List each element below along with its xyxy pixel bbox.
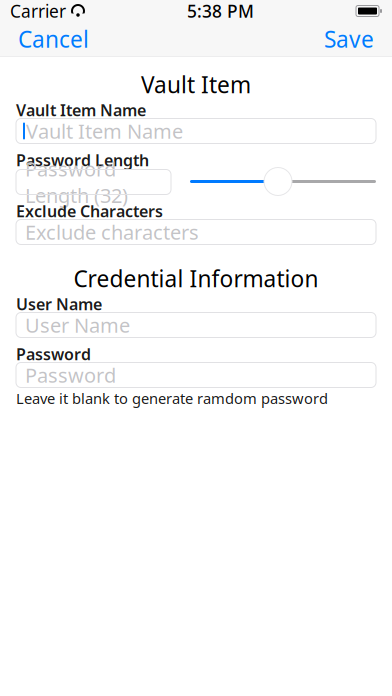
staticText: 5:38 PM (187, 0, 254, 22)
staticText: Password Length (16, 149, 149, 171)
staticText: Password Length (32) (25, 155, 128, 208)
staticText: User Name (25, 312, 130, 338)
staticText: Save (324, 24, 374, 54)
staticText: Exclude Characters (16, 200, 163, 222)
staticText: Password (25, 362, 116, 388)
staticText: User Name (16, 293, 102, 315)
staticText: Credential Information (73, 263, 318, 293)
staticText: Vault Item (141, 69, 251, 99)
staticText: Cancel (18, 24, 89, 54)
staticText: Vault Item Name (16, 99, 146, 121)
staticText: Carrier (10, 0, 66, 22)
button[interactable]: Cancel (16, 22, 91, 55)
staticText: Password (16, 343, 91, 365)
button[interactable]: Save (322, 22, 376, 55)
staticText: Leave it blank to generate ramdom passwo… (16, 388, 328, 408)
staticText: Exclude characters (25, 219, 199, 245)
staticText: Vault Item Name (26, 118, 183, 144)
